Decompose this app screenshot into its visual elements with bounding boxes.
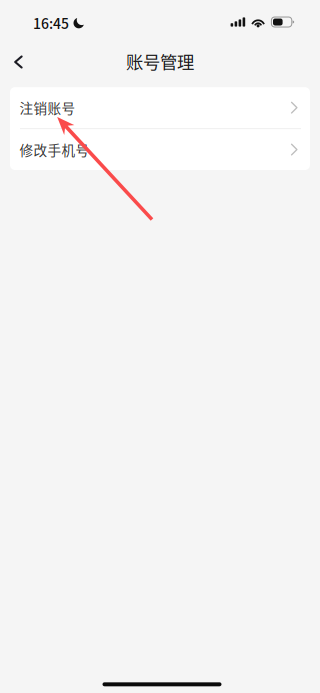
button[interactable]: 注销账号 <box>10 87 310 128</box>
staticText: 16:45 <box>33 13 69 33</box>
staticText: 账号管理 <box>126 49 194 74</box>
staticText: 注销账号 <box>20 98 76 117</box>
button[interactable]: 修改手机号 <box>10 129 310 170</box>
staticText: 修改手机号 <box>20 140 90 159</box>
button[interactable]: Back <box>0 44 36 80</box>
